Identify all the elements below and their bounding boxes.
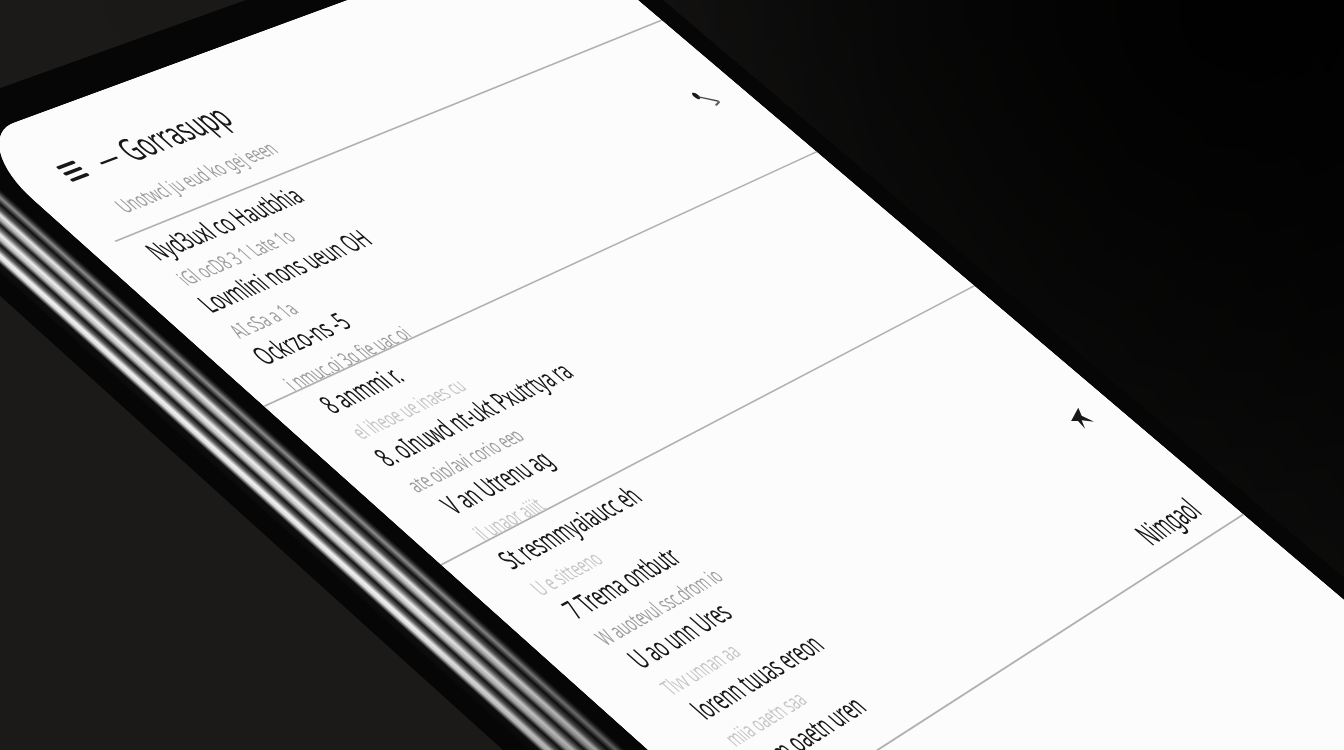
staticText: il unaor aiiit [464, 491, 547, 541]
staticText: 8 anmmi r. [309, 359, 413, 421]
staticText: Unotwcl ju eud ko gej eeen [106, 135, 284, 218]
staticText: AI sSa a 1a [221, 295, 300, 339]
button[interactable]: St resmmyaiaucc eh [442, 286, 1028, 619]
button[interactable]: V an Utrenu ag [381, 241, 974, 564]
button[interactable]: aueri nnoa [806, 561, 1344, 750]
button[interactable]: 7 Trema ontbutr [501, 331, 1081, 672]
button[interactable]: 8 anmmi r. [265, 152, 869, 459]
staticText: lorenn tuuas ereon [680, 626, 833, 727]
button[interactable]: lorenn tuuas ereon [621, 422, 1188, 750]
button[interactable]: srrea ouno [869, 608, 1344, 750]
staticText: U e sitteeno [522, 545, 605, 596]
staticText: miia oaetn saa [716, 684, 809, 747]
staticText: Lovmlini nons ueun OH [187, 223, 381, 320]
staticText: saa uren tta [780, 743, 859, 750]
staticText: iGl ocD8 3 1 Late 1o [168, 223, 298, 286]
staticText: Nyd3uxl co Hautbhia [135, 180, 313, 267]
button[interactable]: U ao unn Ures [561, 376, 1135, 726]
button[interactable]: Ockrzo-ns -5 [206, 107, 816, 406]
staticText: Ockrzo-ns -5 [241, 305, 361, 372]
staticText: i nmuc.oj 3g fie uac oi [275, 320, 413, 391]
staticText: Nimgaol [1123, 490, 1211, 553]
button[interactable]: nrm oaetn uren [682, 468, 1243, 750]
button[interactable]: 8. oInuwd nt-ukt Pxutrtya ra [323, 196, 921, 511]
button[interactable]: Menu [45, 152, 100, 190]
staticText: St resmmyaiaucc eh [487, 478, 651, 577]
staticText: Tlyy unnan aa [652, 637, 742, 696]
button[interactable]: Nyd3uxl co Hautbhia [91, 21, 713, 303]
button[interactable]: Lovmlini nons ueun OH [148, 64, 764, 354]
staticText: 8. oInuwd nt-ukt Pxutrtya ra [364, 354, 583, 474]
staticText: el iheoe ue jnaes cu [343, 372, 468, 440]
staticText: — [80, 139, 132, 177]
staticText: nrm oaetn uren [744, 688, 875, 750]
staticText: W auoteyul ssc.drom jo [586, 562, 725, 646]
staticText: U ao unn Ures [617, 594, 741, 676]
staticText: Gorrasupp [102, 95, 244, 170]
staticText: 7 Trema ontbutr [552, 539, 691, 626]
button[interactable]: eiro taeun [745, 515, 1299, 750]
staticText: ate oip/ayi corio eep [398, 422, 526, 493]
staticText: V an Utrenu ag [430, 442, 563, 522]
